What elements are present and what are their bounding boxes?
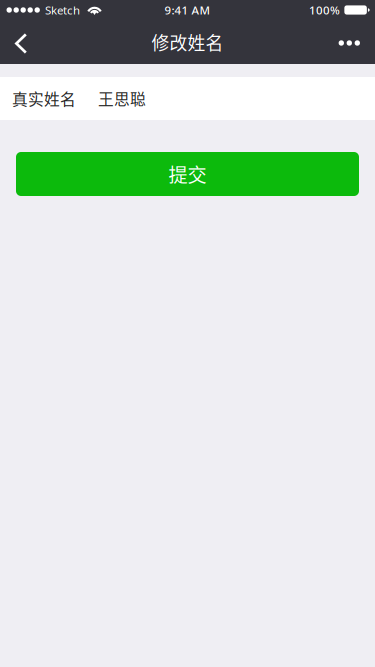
staticText: 真实姓名 <box>12 87 76 110</box>
staticText: 9:41 AM <box>164 2 210 18</box>
button[interactable]: Back <box>0 20 43 64</box>
staticText: 王思聪 <box>98 87 146 110</box>
staticText: 修改姓名 <box>151 29 223 55</box>
staticText: 100% <box>309 2 340 18</box>
staticText: Sketch <box>45 2 80 18</box>
button[interactable]: 提交 <box>16 152 359 196</box>
staticText: 提交 <box>168 160 206 188</box>
button[interactable]: More options <box>322 20 375 64</box>
button[interactable]: 真实姓名 <box>0 77 375 120</box>
